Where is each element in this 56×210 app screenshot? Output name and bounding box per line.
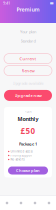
staticText: Current	[19, 56, 36, 61]
staticText: Standard	[20, 38, 35, 44]
staticText: Premium	[16, 6, 39, 13]
staticText: Renew	[21, 68, 34, 73]
staticText: 9:41	[3, 0, 10, 6]
button[interactable]: Choose plan	[8, 166, 48, 174]
staticText: No adverts	[10, 158, 24, 161]
button[interactable]: Plans	[28, 196, 42, 210]
staticText: £50	[20, 126, 35, 136]
staticText: PLAN	[24, 110, 31, 113]
button[interactable]: Home	[0, 196, 14, 210]
staticText: Upgrade available	[12, 81, 43, 86]
staticText: Unlimited access	[10, 150, 32, 153]
staticText: Package 1	[19, 141, 37, 146]
staticText: Monthly	[17, 115, 38, 123]
button[interactable]: Renew	[4, 66, 52, 76]
staticText: Priority support	[10, 154, 32, 157]
button[interactable]: Upgrade now	[4, 90, 52, 101]
staticText: ▮▮▮	[50, 1, 53, 4]
staticText: Your plan	[20, 29, 36, 34]
button[interactable]: Current	[4, 54, 52, 64]
staticText: Choose plan	[16, 168, 40, 173]
button[interactable]: Profile	[42, 196, 56, 210]
staticText: Upgrade now	[14, 93, 41, 98]
button[interactable]: Search	[14, 196, 28, 210]
